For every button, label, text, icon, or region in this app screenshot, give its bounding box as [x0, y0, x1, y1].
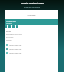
- button[interactable]: Copy: [12, 25, 15, 28]
- staticText: and usage: [6, 36, 14, 38]
- button[interactable]: Edit: [5, 25, 7, 28]
- button[interactable]: More: [16, 25, 18, 28]
- staticText: produce: [6, 22, 12, 24]
- staticText: Details: [6, 30, 12, 32]
- button[interactable]: Content item row: [6, 48, 58, 50]
- button[interactable]: Share: [8, 25, 11, 28]
- button[interactable]: Content item row: [6, 52, 58, 54]
- staticText: Options: [6, 39, 12, 41]
- button[interactable]: Content item row: [6, 44, 58, 46]
- staticText: Content item row: [9, 48, 22, 50]
- staticText: Content item row: [9, 44, 22, 46]
- staticText: Produce Purchase: [24, 6, 40, 9]
- staticText: Content item row: [9, 52, 22, 54]
- staticText: Description of the tool: [6, 33, 22, 35]
- staticText: Overview: [5, 14, 58, 16]
- staticText: Create Content Tools: [21, 2, 44, 5]
- staticText: Content Tool: [6, 20, 16, 22]
